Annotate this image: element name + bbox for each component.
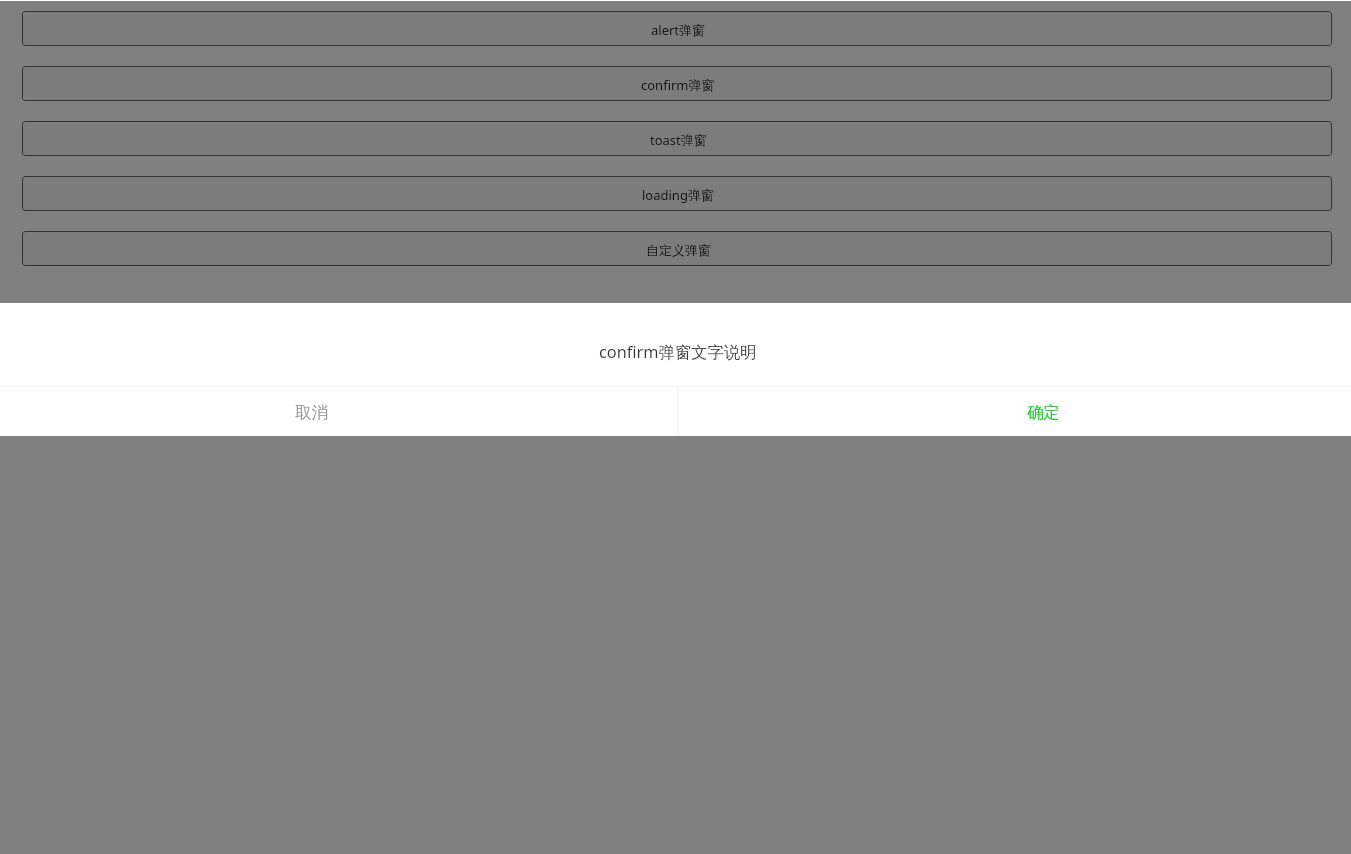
button[interactable]: toast弹窗: [22, 121, 1332, 156]
staticText: 取消: [295, 402, 328, 423]
button[interactable]: 自定义弹窗: [22, 231, 1332, 266]
button[interactable]: loading弹窗: [22, 176, 1332, 211]
staticText: 确定: [1027, 402, 1060, 423]
button[interactable]: confirm弹窗: [22, 66, 1332, 101]
staticText: confirm弹窗: [641, 76, 715, 94]
staticText: toast弹窗: [650, 131, 707, 149]
staticText: loading弹窗: [642, 186, 714, 204]
staticText: confirm弹窗文字说明: [599, 341, 757, 363]
staticText: 自定义弹窗: [646, 242, 711, 258]
button[interactable]: 取消: [0, 387, 677, 436]
staticText: alert弹窗: [651, 21, 706, 39]
button[interactable]: alert弹窗: [22, 11, 1332, 46]
button[interactable]: 确定: [678, 387, 1351, 436]
button[interactable]: Close dialog: [0, 0, 1351, 854]
